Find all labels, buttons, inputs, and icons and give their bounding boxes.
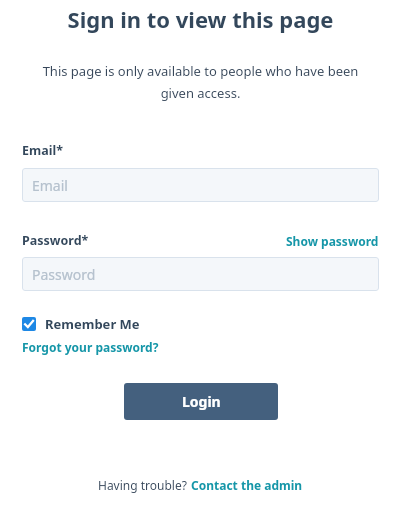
staticText: Remember Me bbox=[45, 315, 140, 333]
button[interactable]: Password bbox=[22, 257, 379, 291]
staticText: Password* bbox=[22, 232, 89, 249]
staticText: Login bbox=[182, 392, 221, 411]
staticText: Having trouble? bbox=[98, 477, 191, 493]
button[interactable]: Remember Me checkbox bbox=[22, 313, 140, 335]
staticText: Sign in to view this page bbox=[22, 4, 379, 34]
other: Remember Me checkbox bbox=[22, 317, 36, 331]
staticText: Contact the admin bbox=[191, 477, 303, 493]
staticText: Email bbox=[32, 176, 68, 195]
staticText: Show password bbox=[286, 233, 379, 249]
staticText: Password bbox=[32, 265, 96, 284]
staticText: This page is only available to people wh… bbox=[34, 62, 367, 102]
button[interactable]: Login bbox=[124, 383, 278, 420]
staticText: Forgot your password? bbox=[22, 339, 159, 355]
button[interactable]: Forgot your password? bbox=[22, 339, 159, 355]
button[interactable]: Contact the admin bbox=[191, 477, 303, 493]
button[interactable]: Email bbox=[22, 168, 379, 202]
button[interactable]: Show password bbox=[286, 233, 379, 249]
staticText: Email* bbox=[22, 142, 63, 159]
